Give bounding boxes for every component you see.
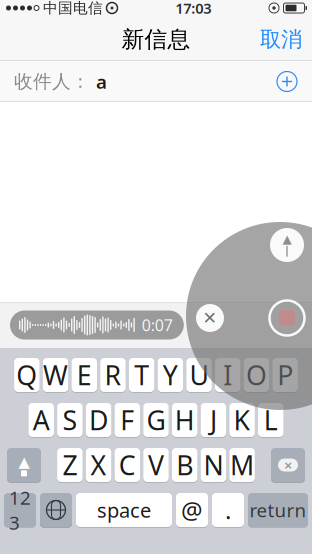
staticText: A <box>33 402 50 438</box>
button[interactable]: M <box>229 447 255 483</box>
staticText: ▲ <box>282 232 291 246</box>
staticText: ✕ <box>202 308 217 328</box>
staticText: 0:07 <box>142 314 173 336</box>
staticText: N <box>203 447 223 483</box>
staticText: D <box>89 402 108 438</box>
button[interactable]: Add contact <box>270 64 304 98</box>
button[interactable]: Y <box>158 357 183 393</box>
button[interactable]: I <box>215 357 240 393</box>
staticText: . <box>225 494 231 526</box>
staticText: H <box>175 402 195 438</box>
staticText: 收件人： <box>14 70 90 93</box>
button[interactable]: E <box>71 357 97 393</box>
button[interactable]: U <box>186 357 212 393</box>
button[interactable]: Cancel recording <box>193 301 227 335</box>
staticText: R <box>104 357 121 393</box>
staticText: U <box>189 357 208 393</box>
staticText: V <box>148 447 164 483</box>
staticText: G <box>146 402 165 438</box>
staticText: 17:03 <box>175 0 211 18</box>
button[interactable]: K <box>229 402 255 438</box>
button[interactable]: R <box>100 357 126 393</box>
button[interactable]: D <box>86 402 111 438</box>
staticText: E <box>77 357 92 393</box>
staticText: C <box>119 447 136 483</box>
staticText: ▲ <box>18 454 29 470</box>
staticText: I <box>223 357 232 393</box>
button[interactable]: Next keyboard <box>40 492 72 528</box>
button[interactable]: G <box>143 402 169 438</box>
staticText: W <box>43 357 68 393</box>
button[interactable]: Stop recording <box>267 298 307 338</box>
staticText: J <box>210 402 217 438</box>
staticText: a <box>96 69 107 94</box>
button[interactable]: Send <box>267 225 307 265</box>
button[interactable]: A <box>28 402 54 438</box>
button[interactable]: Shift <box>7 447 41 483</box>
staticText: K <box>234 402 251 438</box>
button[interactable]: L <box>258 402 283 438</box>
button[interactable]: Q <box>14 357 40 393</box>
button[interactable]: Z <box>57 447 83 483</box>
button[interactable]: Delete <box>271 447 305 483</box>
button[interactable]: W <box>43 357 68 393</box>
button[interactable]: N <box>201 447 226 483</box>
button[interactable]: C <box>115 447 140 483</box>
button[interactable]: P <box>272 357 298 393</box>
staticText: T <box>134 357 149 393</box>
staticText: Q <box>16 357 37 393</box>
staticText: F <box>120 402 134 438</box>
staticText: X <box>91 447 107 483</box>
button[interactable]: S <box>57 402 83 438</box>
staticText: B <box>176 447 193 483</box>
button[interactable]: return <box>248 492 308 528</box>
staticText: 新信息 <box>121 26 190 53</box>
staticText: O <box>246 357 267 393</box>
staticText: 中国电信 <box>43 0 103 17</box>
button[interactable]: . <box>212 492 244 528</box>
staticText: 取消 <box>260 26 302 53</box>
staticText: 123 <box>9 485 31 535</box>
staticText: Y <box>163 357 178 393</box>
staticText: return <box>249 498 306 522</box>
button[interactable]: 取消 <box>250 16 312 63</box>
staticText: × <box>284 455 292 475</box>
button[interactable]: H <box>172 402 197 438</box>
button[interactable]: J <box>201 402 226 438</box>
button[interactable]: F <box>114 402 140 438</box>
button[interactable]: space <box>76 492 172 528</box>
staticText: P <box>277 357 293 393</box>
staticText: Z <box>62 447 77 483</box>
staticText: space <box>97 497 151 523</box>
button[interactable]: 123 <box>4 492 36 528</box>
staticText: L <box>264 402 278 438</box>
button[interactable]: O <box>244 357 269 393</box>
button[interactable]: X <box>86 447 111 483</box>
button[interactable]: V <box>143 447 169 483</box>
staticText: S <box>62 402 77 438</box>
button[interactable]: B <box>172 447 197 483</box>
staticText: M <box>230 447 254 483</box>
button[interactable]: T <box>129 357 154 393</box>
button[interactable]: @ <box>176 492 208 528</box>
staticText: @ <box>181 494 203 526</box>
